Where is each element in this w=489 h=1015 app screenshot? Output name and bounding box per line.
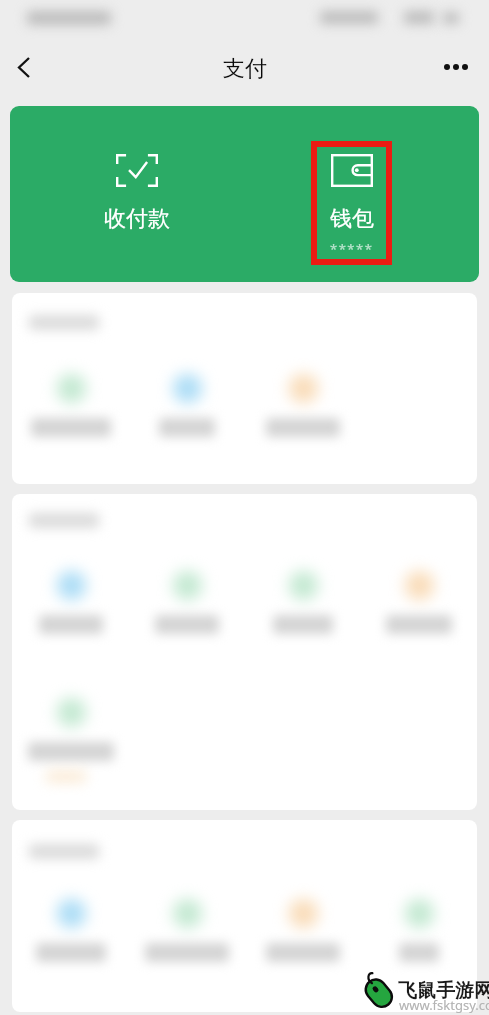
button[interactable] xyxy=(12,571,129,643)
button[interactable]: 收付款 xyxy=(57,106,217,282)
button[interactable] xyxy=(245,374,361,446)
button[interactable] xyxy=(129,571,245,643)
button[interactable]: Back xyxy=(0,37,48,97)
button[interactable] xyxy=(12,899,129,971)
button[interactable]: More options xyxy=(433,37,489,97)
staticText: 飞鼠手游网 xyxy=(398,979,489,1003)
staticText: www.fsktgsy.com xyxy=(399,996,489,1014)
button[interactable] xyxy=(361,571,477,643)
button[interactable] xyxy=(12,698,129,770)
staticText: 钱包 xyxy=(330,205,374,233)
button[interactable] xyxy=(12,374,129,446)
button[interactable] xyxy=(361,899,477,971)
button[interactable]: 钱包 xyxy=(272,106,432,282)
staticText: 支付 xyxy=(223,55,267,83)
staticText: ***** xyxy=(330,240,374,258)
button[interactable] xyxy=(245,899,361,971)
button[interactable] xyxy=(129,899,245,971)
staticText: 收付款 xyxy=(104,205,170,233)
button[interactable] xyxy=(245,571,361,643)
button[interactable] xyxy=(129,374,245,446)
